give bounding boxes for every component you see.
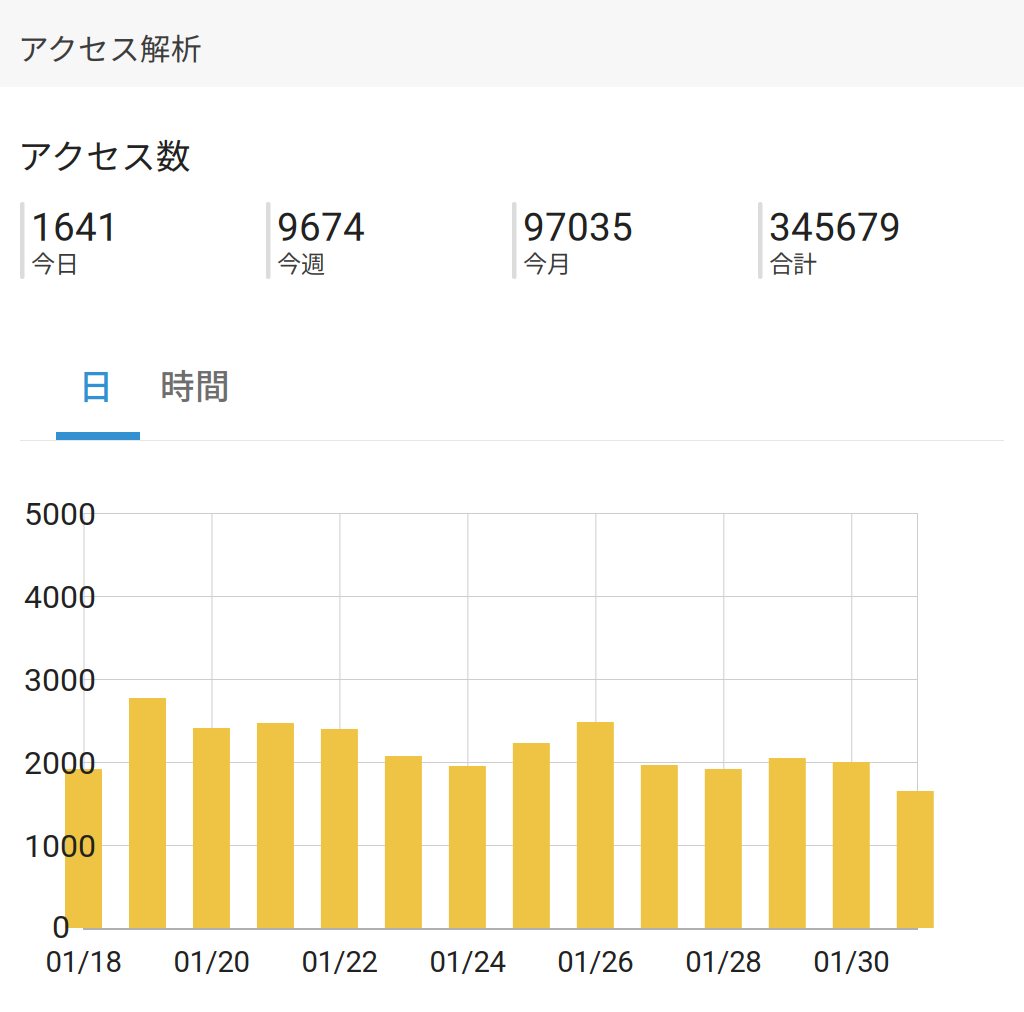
staticText: 1641 (31, 205, 119, 250)
staticText: 3000 (24, 661, 96, 699)
button[interactable]: 時間 (153, 347, 237, 421)
staticText: 合計 (769, 245, 817, 280)
staticText: 345679 (769, 205, 901, 250)
staticText: 01/18 (45, 945, 121, 979)
staticText: 01/28 (685, 945, 761, 979)
staticText: 5000 (24, 495, 96, 533)
staticText: 9674 (277, 205, 365, 250)
staticText: 時間 (160, 359, 230, 409)
staticText: 今週 (277, 245, 325, 280)
staticText: 01/24 (429, 945, 505, 979)
staticText: 01/26 (557, 945, 633, 979)
staticText: 今日 (31, 245, 79, 280)
staticText: 01/30 (813, 945, 889, 979)
staticText: 4000 (24, 578, 96, 616)
button[interactable]: 日 (54, 347, 138, 421)
staticText: 97035 (523, 205, 633, 250)
staticText: アクセス解析 (18, 25, 202, 69)
staticText: アクセス数 (18, 129, 191, 179)
staticText: 1000 (24, 827, 96, 865)
staticText: 01/22 (301, 945, 377, 979)
staticText: 0 (52, 908, 70, 946)
staticText: 今月 (523, 245, 571, 280)
staticText: 日 (78, 359, 113, 409)
staticText: 2000 (24, 744, 96, 782)
staticText: 01/20 (173, 945, 249, 979)
